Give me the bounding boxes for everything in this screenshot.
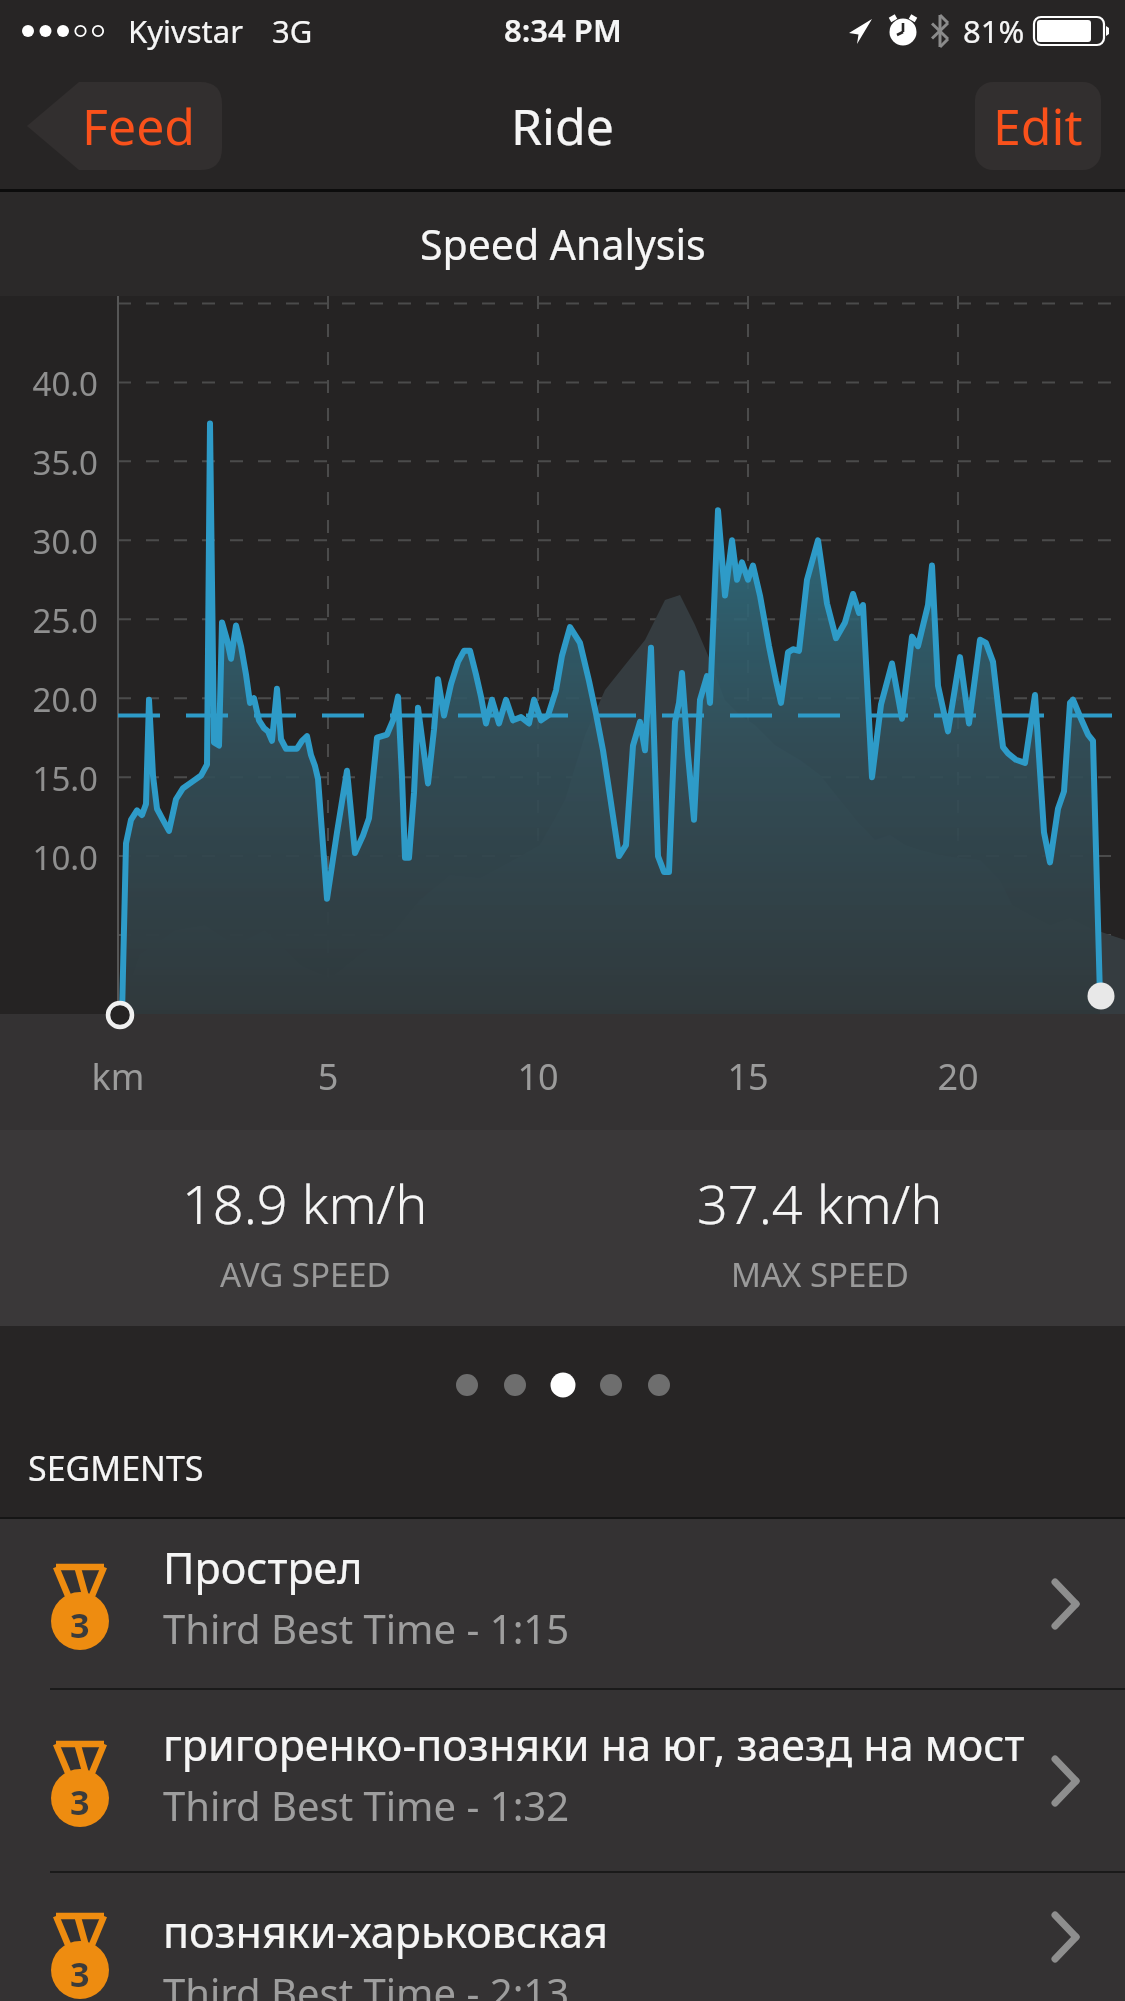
- staticText: 25.0: [24, 598, 98, 643]
- staticText: григоренко-позняки на юг, заезд на мост: [163, 1715, 1025, 1774]
- staticText: Third Best Time - 2:13: [163, 1965, 570, 2001]
- staticText: 15.0: [24, 756, 98, 801]
- staticText: Feed: [82, 92, 196, 160]
- staticText: Прострел: [163, 1538, 363, 1597]
- staticText: 3G: [272, 10, 313, 52]
- staticText: 5: [268, 1052, 388, 1101]
- staticText: 20: [898, 1052, 1018, 1101]
- button[interactable]: 3: [0, 1690, 1125, 1871]
- staticText: 37.4 km/h: [697, 1166, 943, 1240]
- staticText: MAX SPEED: [731, 1252, 909, 1297]
- staticText: 10: [478, 1052, 598, 1101]
- staticText: 20.0: [24, 677, 98, 722]
- button[interactable]: 3: [0, 1873, 1125, 2001]
- staticText: 81%: [963, 10, 1025, 52]
- staticText: Speed Analysis: [420, 216, 706, 272]
- staticText: 3: [70, 1951, 90, 1997]
- staticText: 3: [70, 1602, 90, 1648]
- button[interactable]: Edit: [975, 82, 1101, 170]
- staticText: 3: [70, 1779, 90, 1825]
- staticText: Third Best Time - 1:32: [163, 1778, 570, 1832]
- staticText: 15: [688, 1052, 808, 1101]
- button[interactable]: Feed: [27, 82, 222, 170]
- staticText: Ride: [511, 92, 614, 160]
- staticText: 18.9 km/h: [182, 1166, 428, 1240]
- staticText: 10.0: [24, 835, 98, 880]
- staticText: 8:34 PM: [504, 9, 622, 51]
- staticText: Edit: [993, 92, 1083, 160]
- staticText: 30.0: [24, 519, 98, 564]
- staticText: km: [58, 1052, 178, 1101]
- staticText: 40.0: [24, 361, 98, 406]
- staticText: Kyivstar: [128, 10, 243, 52]
- button[interactable]: 3: [0, 1519, 1125, 1688]
- staticText: SEGMENTS: [28, 1445, 204, 1491]
- staticText: AVG SPEED: [220, 1252, 391, 1297]
- staticText: 35.0: [24, 440, 98, 485]
- staticText: позняки-харьковская: [163, 1902, 609, 1961]
- staticText: Third Best Time - 1:15: [163, 1601, 570, 1655]
